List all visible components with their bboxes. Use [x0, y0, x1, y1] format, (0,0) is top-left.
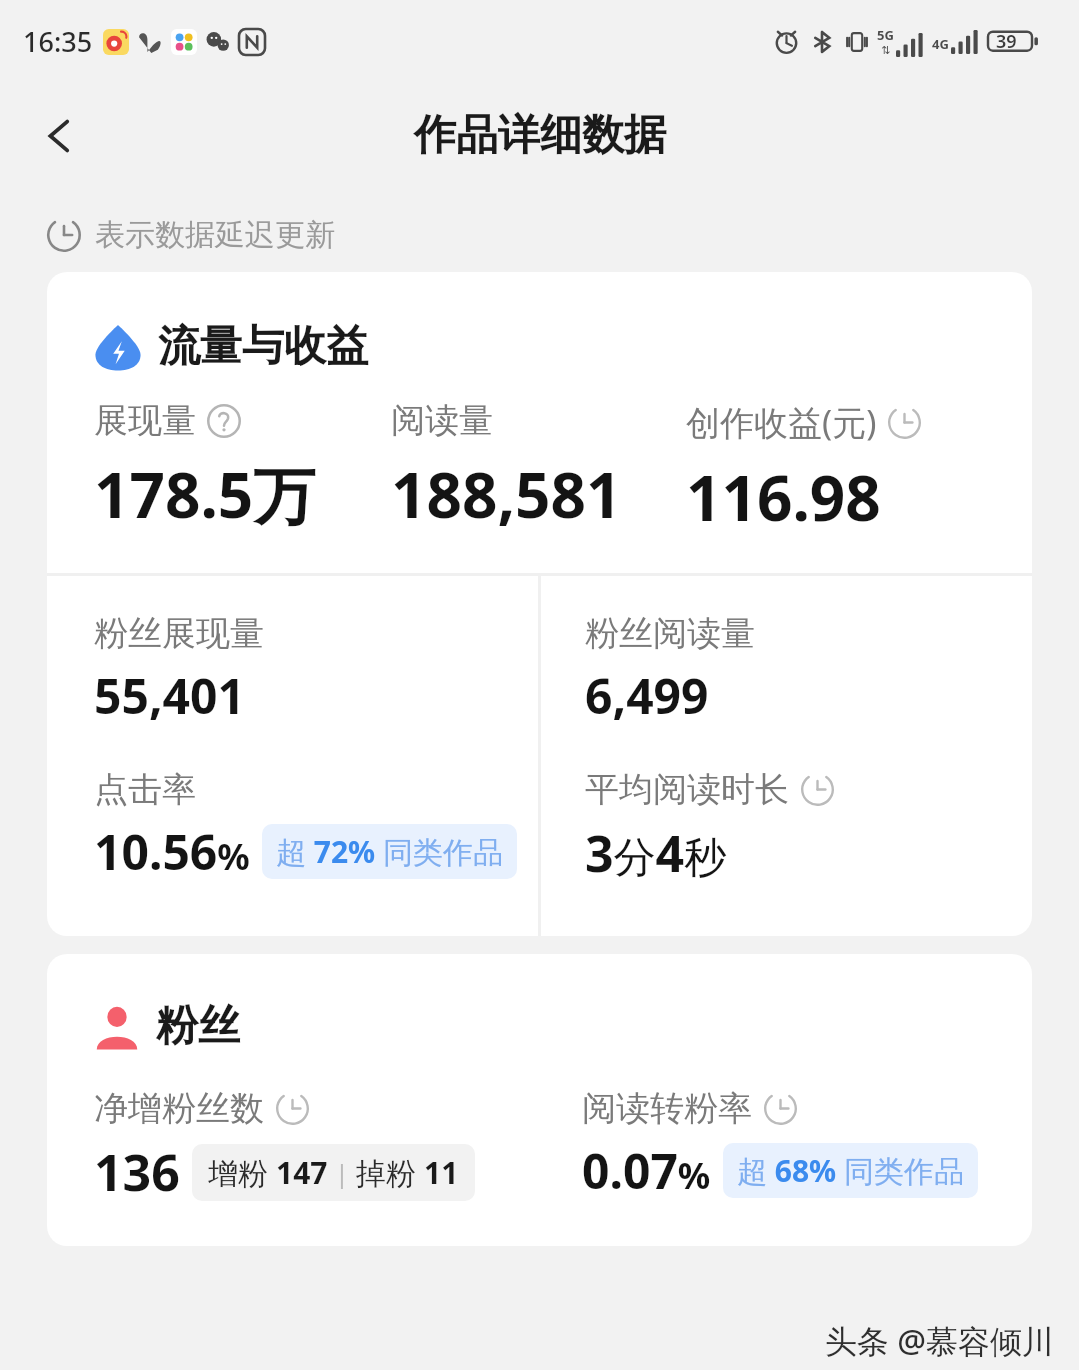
staticText: 表示数据延迟更新 [95, 216, 335, 254]
button[interactable]: 增粉 [208, 1152, 459, 1193]
staticText: 0.07% [582, 1138, 711, 1203]
staticText: 188,581 [391, 452, 622, 536]
button[interactable]: 粉丝展现量 [94, 612, 264, 728]
staticText: 超 68% 同类作品 [737, 1150, 964, 1191]
staticText: 头条 @慕容倾川 [825, 1319, 1055, 1363]
staticText: 增粉 [208, 1152, 276, 1193]
button[interactable]: 创作收益(元) [686, 399, 1032, 539]
staticText: 16:35 [23, 23, 93, 60]
staticText: 作品详细数据 [414, 109, 666, 162]
staticText: 55,401 [94, 663, 245, 728]
button[interactable]: 平均阅读时长 [585, 768, 834, 887]
staticText: 净增粉丝数 [94, 1087, 264, 1130]
staticText: 阅读量 [391, 399, 493, 442]
staticText: 展现量 [94, 399, 196, 442]
button[interactable]: 点击率 [94, 768, 517, 884]
button[interactable]: 粉丝阅读量 [585, 612, 755, 728]
staticText: 创作收益(元) [686, 399, 877, 445]
button[interactable]: 粉丝 [94, 1000, 1032, 1053]
staticText: 11 [424, 1152, 459, 1193]
button[interactable]: 超 72% 同类作品 [276, 831, 503, 872]
button[interactable]: 流量与收益 [94, 320, 1032, 373]
staticText: 136 [94, 1138, 180, 1206]
staticText: 粉丝 [156, 1000, 240, 1053]
staticText: 39 [996, 29, 1017, 54]
staticText: 粉丝阅读量 [585, 612, 755, 655]
staticText: 掉粉 [356, 1152, 424, 1193]
staticText: 阅读转粉率 [582, 1087, 752, 1130]
staticText: 3分4秒 [585, 819, 727, 887]
staticText: 点击率 [94, 768, 196, 811]
button[interactable]: 阅读量 [391, 399, 686, 536]
staticText: 6,499 [585, 663, 709, 728]
staticText: 粉丝展现量 [94, 612, 264, 655]
staticText: 116.98 [686, 455, 881, 539]
staticText: 147 [276, 1152, 328, 1193]
staticText: 平均阅读时长 [585, 768, 789, 811]
staticText: ⇅ [881, 44, 891, 57]
button[interactable]: 展现量 [94, 399, 391, 537]
staticText: | [328, 1155, 356, 1190]
staticText: 178.5万 [94, 452, 316, 537]
staticText: 5G [877, 26, 894, 44]
staticText: 超 72% 同类作品 [276, 831, 503, 872]
button[interactable]: 返回 [20, 96, 100, 176]
staticText: 10.56% [94, 819, 250, 884]
button[interactable]: 超 68% 同类作品 [737, 1150, 964, 1191]
staticText: 流量与收益 [158, 320, 368, 373]
staticText: 4G [932, 35, 949, 53]
